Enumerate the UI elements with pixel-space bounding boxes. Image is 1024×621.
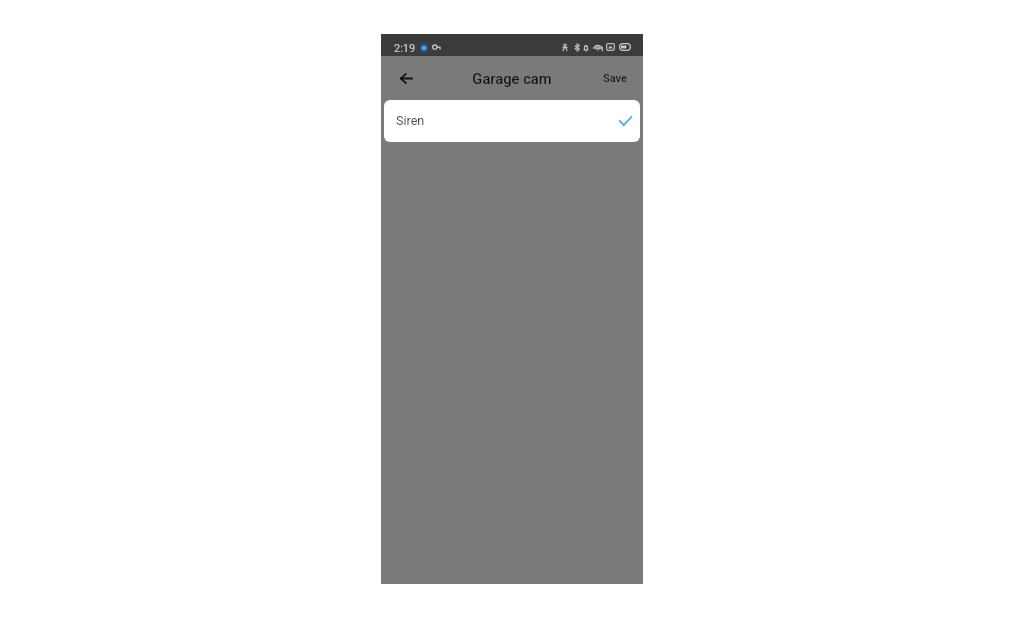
staticText: 2:19 xyxy=(394,42,416,55)
staticText: Save xyxy=(603,72,627,85)
staticText: Siren xyxy=(396,113,425,128)
other: Selected xyxy=(619,116,632,126)
button[interactable]: Navigate up xyxy=(393,65,419,91)
button[interactable]: Siren xyxy=(384,100,640,142)
button[interactable]: Save xyxy=(603,72,627,85)
staticText: Garage cam xyxy=(472,70,552,87)
